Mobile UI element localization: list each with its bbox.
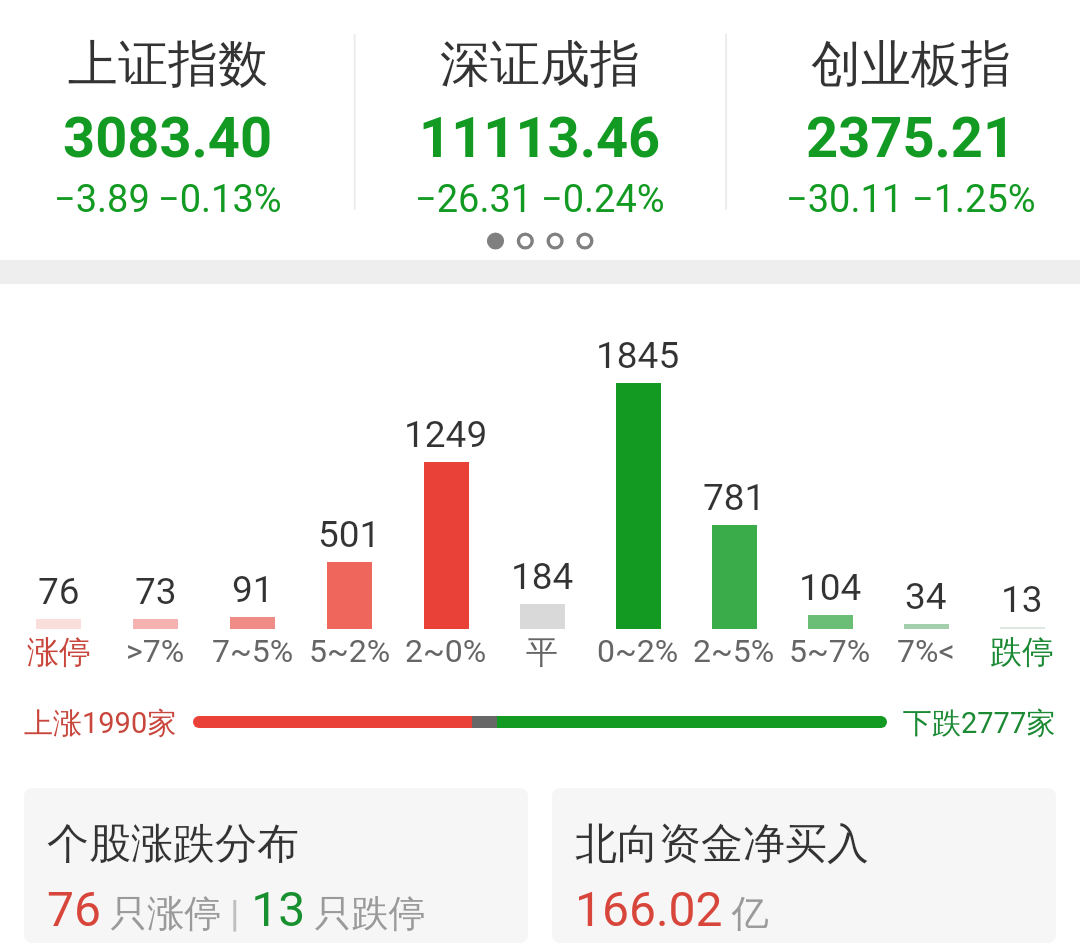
staticText: 深证成指 xyxy=(440,33,640,96)
button[interactable]: 深证成指 xyxy=(354,33,726,222)
staticText: 北向资金净买入 xyxy=(575,818,869,871)
staticText: −30.11 xyxy=(786,177,904,222)
staticText: >7% xyxy=(126,632,185,670)
button[interactable]: 73 xyxy=(107,284,204,680)
button[interactable]: 104 xyxy=(782,284,878,680)
staticText: 13 xyxy=(1001,578,1043,621)
staticText: −0.24% xyxy=(541,177,665,222)
staticText: 平 xyxy=(526,632,558,672)
button[interactable]: Page indicator xyxy=(480,226,600,256)
staticText: 11113.46 xyxy=(419,105,661,171)
staticText: 3083.40 xyxy=(63,105,273,171)
staticText: 2375.21 xyxy=(806,105,1016,171)
button[interactable]: 北向资金净买入 xyxy=(552,788,1056,943)
button[interactable]: 1249 xyxy=(398,284,494,680)
button[interactable]: 76 xyxy=(10,284,107,680)
staticText: 91 xyxy=(232,568,274,611)
staticText: 下跌2777家 xyxy=(903,705,1056,742)
button[interactable]: 1845 xyxy=(590,284,686,680)
staticText: −26.31 xyxy=(415,177,533,222)
staticText: 104 xyxy=(799,566,862,609)
staticText: 上涨1990家 xyxy=(24,705,177,742)
staticText: 1845 xyxy=(596,334,680,377)
button[interactable]: 上证指数 xyxy=(0,33,354,222)
button[interactable]: 上涨1990家 xyxy=(0,680,1080,788)
button[interactable]: 34 xyxy=(878,284,974,680)
staticText: 7~5% xyxy=(212,632,294,670)
staticText: 73 xyxy=(135,570,177,613)
staticText: 34 xyxy=(905,575,947,618)
staticText: −3.89 xyxy=(54,177,150,222)
button[interactable]: 创业板指 xyxy=(725,33,1080,222)
staticText: 76 xyxy=(38,570,80,613)
button[interactable]: 184 xyxy=(494,284,590,680)
button[interactable]: 501 xyxy=(301,284,398,680)
staticText: 2~5% xyxy=(693,632,775,670)
staticText: −0.13% xyxy=(158,177,282,222)
button[interactable]: 13 xyxy=(974,284,1070,680)
staticText: 跌停 xyxy=(990,632,1054,672)
button[interactable]: 91 xyxy=(204,284,301,680)
staticText: 个股涨跌分布 xyxy=(47,818,299,871)
staticText: 184 xyxy=(511,555,574,598)
staticText: 781 xyxy=(703,476,766,519)
staticText: 上证指数 xyxy=(68,33,268,96)
staticText: 1249 xyxy=(404,413,488,456)
staticText: 7%< xyxy=(897,632,955,670)
staticText: 166.02 亿 xyxy=(575,881,769,937)
staticText: 501 xyxy=(318,513,381,556)
button[interactable]: 781 xyxy=(686,284,782,680)
staticText: 0~2% xyxy=(597,632,679,670)
staticText: 涨停 xyxy=(27,632,91,672)
staticText: 5~2% xyxy=(309,632,391,670)
staticText: −1.25% xyxy=(912,177,1036,222)
button[interactable]: 个股涨跌分布 xyxy=(24,788,528,943)
staticText: 2~0% xyxy=(405,632,487,670)
staticText: 76 只涨停 | 13 只跌停 xyxy=(47,881,426,937)
staticText: 5~7% xyxy=(789,632,871,670)
staticText: 创业板指 xyxy=(811,33,1011,96)
